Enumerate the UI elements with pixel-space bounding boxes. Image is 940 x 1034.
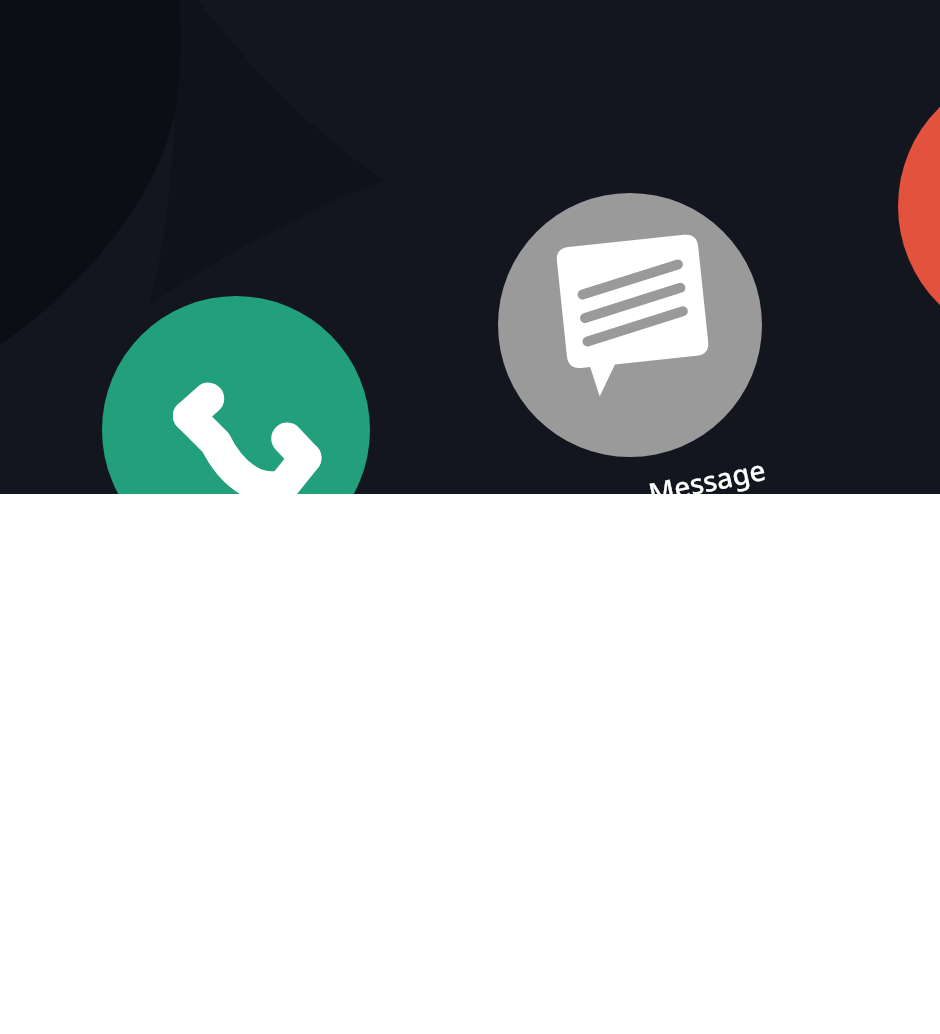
button[interactable]: Phone [102, 296, 370, 564]
button[interactable]: App [898, 68, 940, 344]
button[interactable]: Message [498, 193, 762, 457]
